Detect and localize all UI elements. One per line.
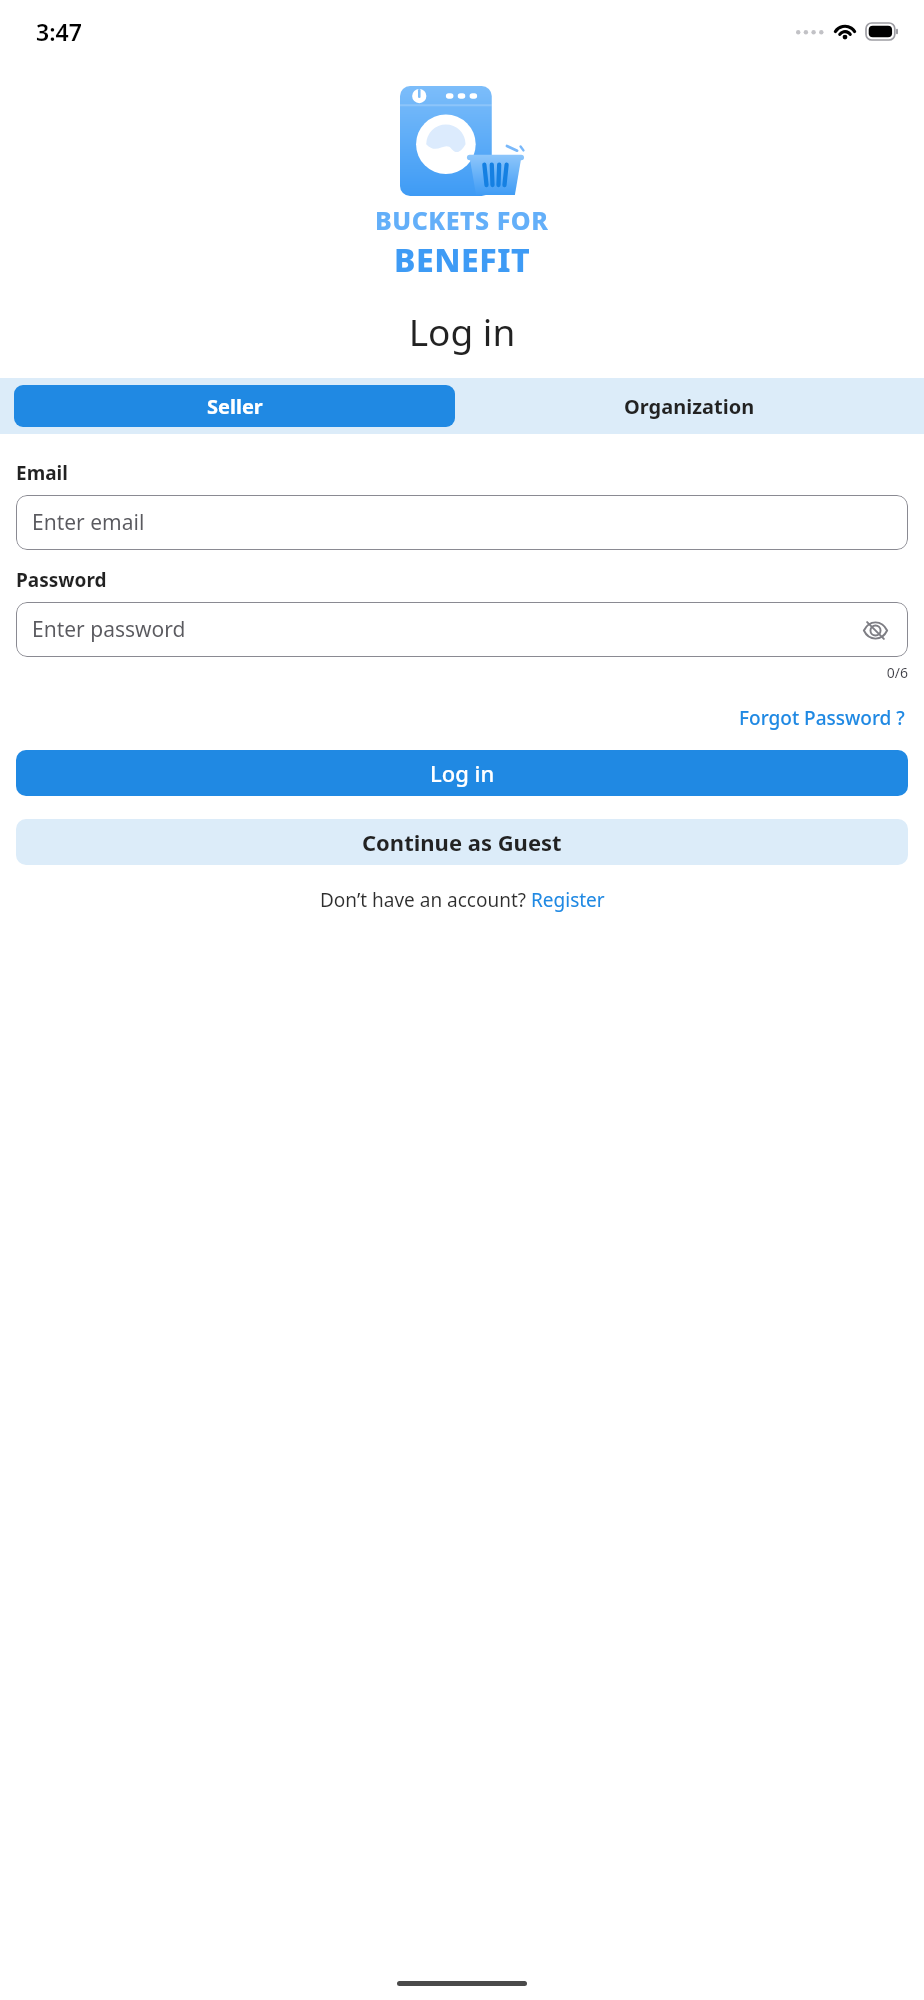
button[interactable]: Show password: [858, 613, 892, 647]
staticText: Log in: [430, 758, 495, 788]
staticText: Password: [16, 567, 107, 593]
staticText: Enter password: [32, 615, 186, 644]
staticText: Enter email: [32, 508, 145, 537]
staticText: Seller: [207, 393, 263, 420]
button[interactable]: Continue as Guest: [16, 819, 908, 865]
staticText: Organization: [624, 393, 755, 420]
staticText: Don’t have an account? Register: [320, 887, 605, 913]
staticText: 0/6: [16, 663, 908, 682]
button[interactable]: Enter password: [16, 602, 908, 657]
button[interactable]: Organization: [469, 385, 910, 427]
staticText: BUCKETS FOR: [375, 203, 549, 237]
staticText: Log in: [0, 306, 924, 356]
button[interactable]: Forgot Password ?: [736, 702, 908, 734]
staticText: 3:47: [36, 16, 82, 47]
button[interactable]: Log in: [16, 750, 908, 796]
button[interactable]: Enter email: [16, 495, 908, 550]
staticText: Email: [16, 460, 68, 486]
button[interactable]: Seller: [14, 385, 455, 427]
staticText: BENEFIT: [394, 238, 531, 282]
staticText: Continue as Guest: [362, 827, 562, 857]
button[interactable]: Don’t have an account? Register: [16, 887, 908, 913]
